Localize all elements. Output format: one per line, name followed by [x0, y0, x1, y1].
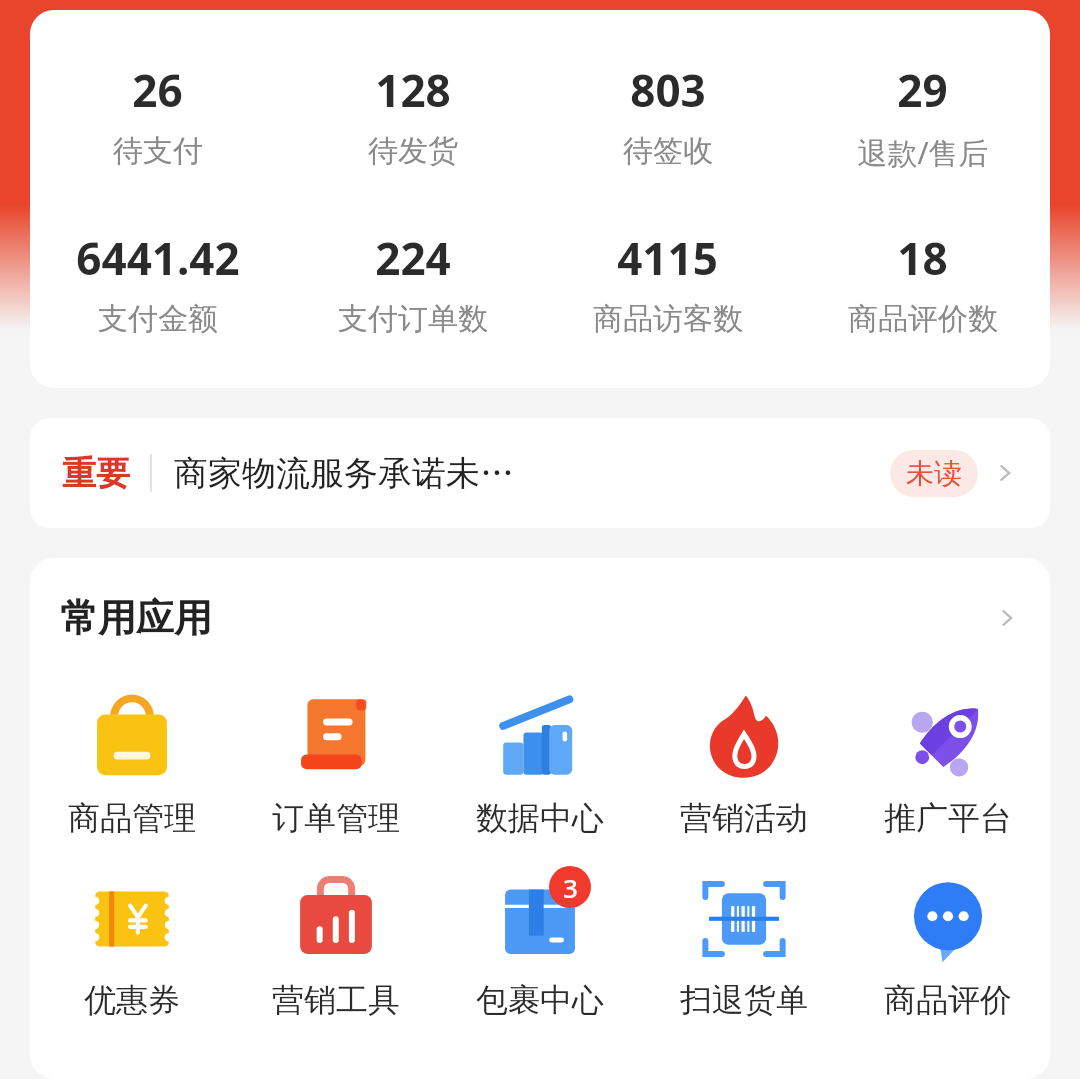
- staticText: 商家物流服务承诺未兑现（缺货...: [174, 452, 532, 495]
- button[interactable]: 优惠券: [30, 860, 234, 1024]
- staticText: 商品访客数: [593, 300, 743, 338]
- staticText: 订单管理: [272, 798, 400, 838]
- staticText: 包裹中心: [476, 980, 604, 1020]
- staticText: 4115: [617, 228, 718, 288]
- button[interactable]: 26: [30, 54, 285, 176]
- button[interactable]: 扫退货单: [642, 860, 846, 1024]
- staticText: 待签收: [623, 132, 713, 170]
- staticText: 商品评价数: [848, 300, 998, 338]
- staticText: 26: [132, 60, 183, 120]
- button[interactable]: 数据中心: [438, 678, 642, 842]
- button[interactable]: 推广平台: [846, 678, 1050, 842]
- button[interactable]: 803: [540, 54, 795, 176]
- button[interactable]: 营销工具: [234, 860, 438, 1024]
- button[interactable]: 重要: [30, 418, 1050, 528]
- button[interactable]: 6441.42: [30, 222, 285, 344]
- staticText: 扫退货单: [680, 980, 808, 1020]
- staticText: 18: [897, 228, 948, 288]
- button[interactable]: 订单管理: [234, 678, 438, 842]
- staticText: 29: [897, 60, 948, 120]
- button[interactable]: 商品管理: [30, 678, 234, 842]
- staticText: 重要: [62, 452, 130, 495]
- staticText: 常用应用: [60, 594, 212, 642]
- staticText: 商品评价: [884, 980, 1012, 1020]
- button[interactable]: 128: [285, 54, 540, 176]
- button[interactable]: 18: [795, 222, 1050, 344]
- staticText: 营销活动: [680, 798, 808, 838]
- staticText: 128: [375, 60, 451, 120]
- button[interactable]: 商品评价: [846, 860, 1050, 1024]
- staticText: 未读: [906, 456, 962, 491]
- button[interactable]: 营销活动: [642, 678, 846, 842]
- staticText: 商品管理: [68, 798, 196, 838]
- staticText: 3: [563, 870, 578, 905]
- staticText: 数据中心: [476, 798, 604, 838]
- staticText: 推广平台: [884, 798, 1012, 838]
- staticText: 支付金额: [98, 300, 218, 338]
- staticText: 待发货: [368, 132, 458, 170]
- staticText: 优惠券: [84, 980, 180, 1020]
- staticText: 6441.42: [76, 228, 240, 288]
- staticText: 支付订单数: [338, 300, 488, 338]
- button[interactable]: 常用应用: [30, 558, 1050, 678]
- button[interactable]: 3: [438, 860, 642, 1024]
- staticText: 营销工具: [272, 980, 400, 1020]
- staticText: 803: [630, 60, 706, 120]
- staticText: 退款/售后: [857, 132, 989, 173]
- staticText: 待支付: [113, 132, 203, 170]
- button[interactable]: 29: [795, 54, 1050, 179]
- staticText: 224: [375, 228, 451, 288]
- button[interactable]: 224: [285, 222, 540, 344]
- button[interactable]: 4115: [540, 222, 795, 344]
